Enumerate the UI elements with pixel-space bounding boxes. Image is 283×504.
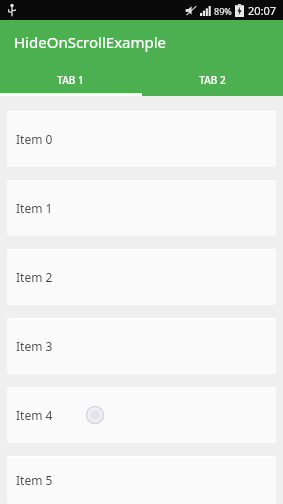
button[interactable]: Item 3: [7, 318, 276, 374]
button[interactable]: Item 0: [7, 111, 276, 167]
button[interactable]: Item 2: [7, 249, 276, 305]
staticText: HideOnScrollExample: [14, 32, 167, 52]
button[interactable]: TAB 1: [0, 63, 141, 96]
staticText: Item 4: [16, 407, 53, 423]
staticText: Item 0: [16, 131, 53, 147]
staticText: TAB 1: [57, 73, 84, 87]
staticText: TAB 2: [199, 73, 226, 87]
staticText: Item 2: [16, 269, 53, 285]
button[interactable]: Item 1: [7, 180, 276, 236]
staticText: 89%: [214, 5, 232, 17]
button[interactable]: Item 5: [7, 456, 276, 504]
staticText: Item 1: [16, 200, 53, 216]
button[interactable]: TAB 2: [141, 63, 283, 96]
staticText: Item 5: [16, 472, 53, 488]
button[interactable]: Item 4: [7, 387, 276, 443]
staticText: Item 3: [16, 338, 53, 354]
staticText: 20:07: [248, 3, 277, 18]
